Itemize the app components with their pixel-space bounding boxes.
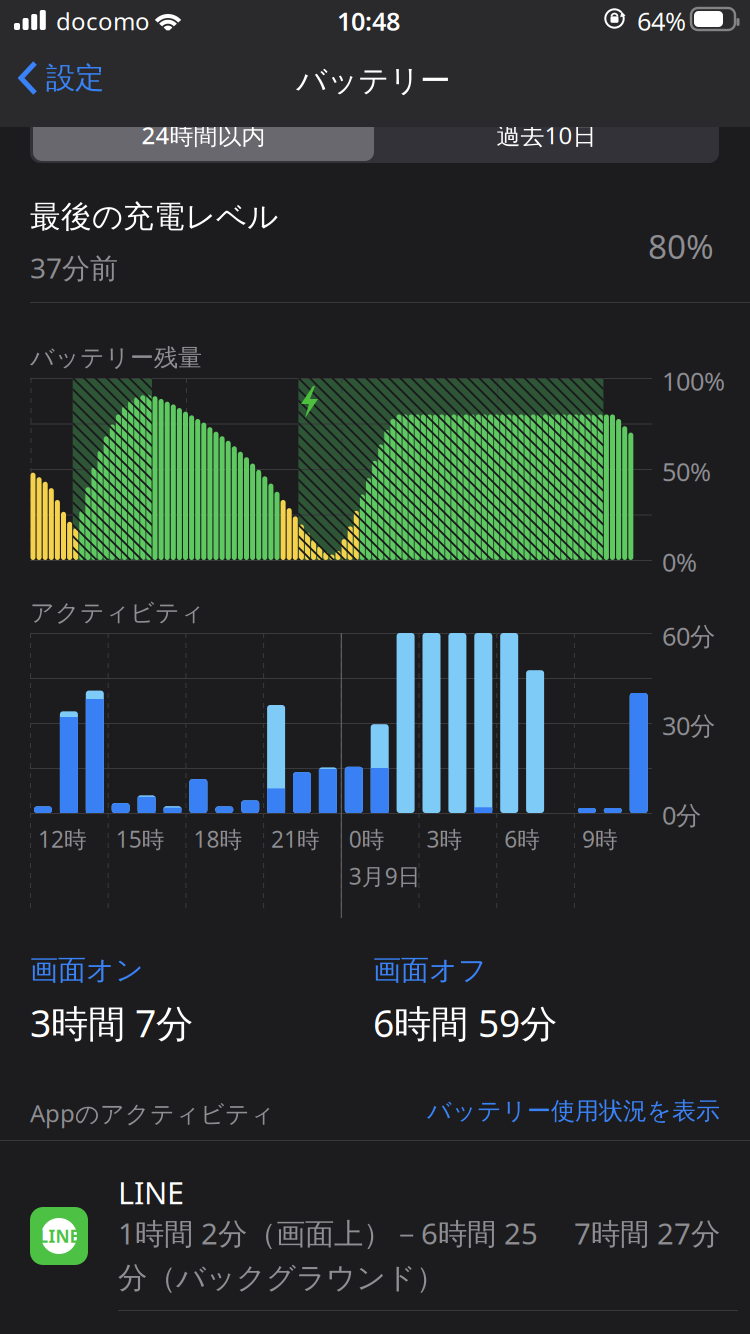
staticText: 18時 xyxy=(193,824,242,854)
staticText: 最後の充電レベル xyxy=(30,198,278,236)
staticText: 過去10日 xyxy=(496,119,596,151)
staticText: LINE xyxy=(118,1172,184,1213)
staticText: 設定 xyxy=(46,60,104,96)
staticText: 100% xyxy=(662,364,725,398)
staticText: バッテリー xyxy=(296,62,451,100)
staticText: 24時間以内 xyxy=(141,119,265,151)
button[interactable]: LINE xyxy=(0,1160,750,1334)
staticText: 3月9日 xyxy=(349,861,421,891)
button[interactable]: 過去10日 xyxy=(374,107,719,163)
staticText: 0時 xyxy=(349,824,385,854)
staticText: 6時 xyxy=(504,824,540,854)
staticText: 60分 xyxy=(662,619,715,653)
staticText: Appのアクティビティ xyxy=(30,1097,275,1129)
staticText: 21時 xyxy=(271,824,320,854)
staticText: 6時間 59分 xyxy=(373,998,557,1048)
staticText: バッテリー使用状況を表示 xyxy=(427,1096,720,1126)
button[interactable]: バッテリー使用状況を表示 xyxy=(400,1094,720,1128)
staticText: LINE xyxy=(38,1224,79,1247)
staticText: アクティビティ xyxy=(30,598,205,627)
staticText: 7時間 27分 xyxy=(574,1213,720,1252)
staticText: 3時 xyxy=(426,824,462,854)
staticText: 15時 xyxy=(116,824,165,854)
staticText: 画面オフ xyxy=(373,953,487,987)
staticText: バッテリー残量 xyxy=(30,343,202,372)
staticText: 50% xyxy=(662,454,711,488)
staticText: 80% xyxy=(648,224,714,268)
staticText: 3時間 7分 xyxy=(30,998,193,1048)
staticText: 分（バックグラウンド） xyxy=(118,1260,445,1296)
button[interactable]: 設定 xyxy=(14,60,108,96)
staticText: 10:48 xyxy=(337,4,400,38)
staticText: 0% xyxy=(662,545,697,579)
staticText: 64% xyxy=(637,4,686,38)
staticText: 37分前 xyxy=(30,249,118,286)
staticText: 30分 xyxy=(662,708,715,742)
staticText: 1時間 2分（画面上）－6時間 25 xyxy=(118,1213,538,1252)
staticText: 9時 xyxy=(582,824,618,854)
staticText: 画面オン xyxy=(30,953,144,987)
button[interactable]: 24時間以内 xyxy=(33,107,374,163)
staticText: 0分 xyxy=(662,798,701,832)
staticText: 12時 xyxy=(38,824,87,854)
staticText: docomo xyxy=(56,5,150,37)
